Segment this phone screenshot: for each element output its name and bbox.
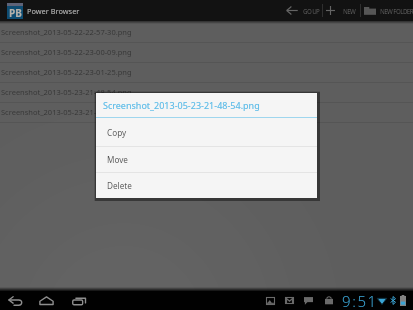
staticText: Copy	[107, 127, 127, 138]
staticText: Delete	[107, 180, 132, 191]
other: Wi-Fi	[377, 296, 387, 305]
staticText: GO UP	[303, 7, 320, 15]
staticText: Move	[107, 154, 128, 165]
button[interactable]: Copy	[96, 118, 317, 146]
button[interactable]: Screenshot_2013-05-23-21-50-10.png	[0, 103, 413, 123]
button[interactable]: Move	[96, 147, 317, 172]
staticText: Power Browser	[27, 6, 80, 16]
staticText: Screenshot_2013-05-22-22-57-30.png	[1, 27, 132, 37]
other: New	[326, 6, 335, 15]
button[interactable]: Recent apps	[67, 291, 91, 310]
staticText: NEW FOLDER	[380, 7, 413, 15]
staticText: NEW	[343, 7, 356, 15]
button[interactable]: Go up	[280, 0, 335, 21]
button[interactable]: Home	[34, 291, 58, 310]
staticText: Screenshot_2013-05-22-23-00-09.png	[1, 47, 132, 57]
button[interactable]: Screenshot_2013-05-22-22-57-30.png	[0, 23, 413, 43]
button[interactable]: New	[320, 0, 375, 21]
other: New folder	[364, 6, 376, 16]
other: Bluetooth	[390, 296, 396, 305]
staticText: Screenshot_2013-05-23-21-48-54.png	[1, 87, 132, 97]
other: Battery	[400, 295, 406, 306]
staticText: Screenshot_2013-05-23-21-48-54.png	[103, 99, 260, 111]
button[interactable]: Screenshot_2013-05-23-21-48-54.png	[0, 83, 413, 103]
staticText: Screenshot_2013-05-23-21-50-10.png	[1, 107, 132, 117]
button[interactable]: New folder	[358, 0, 412, 21]
staticText: Screenshot_2013-05-22-23-01-25.png	[1, 67, 132, 77]
staticText: 9:51	[342, 291, 378, 310]
button[interactable]: Screenshot_2013-05-22-23-01-25.png	[0, 63, 413, 83]
button[interactable]: Back	[3, 291, 27, 310]
button[interactable]: Delete	[96, 173, 317, 198]
staticText: PB	[9, 6, 22, 19]
other: Go up	[286, 6, 298, 15]
button[interactable]: Screenshot_2013-05-22-23-00-09.png	[0, 43, 413, 63]
